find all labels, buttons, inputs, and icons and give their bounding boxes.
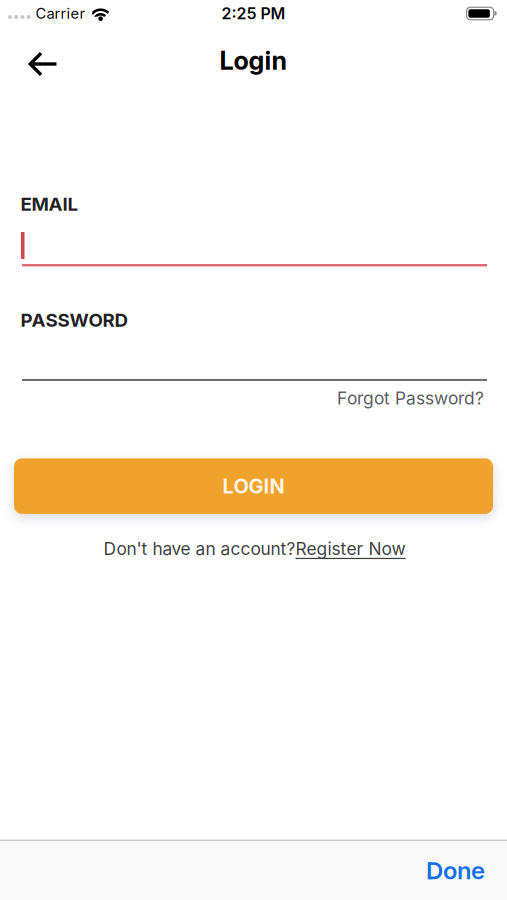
button[interactable]: Forgot Password? — [337, 388, 484, 408]
staticText: Forgot Password? — [337, 388, 484, 408]
staticText: 2:25 PM — [221, 4, 285, 23]
staticText: EMAIL — [20, 193, 78, 215]
staticText: Done — [426, 856, 485, 885]
button[interactable]: Done — [426, 856, 507, 885]
staticText: Don't have an account? — [103, 538, 295, 559]
button[interactable]: LOGIN — [14, 458, 493, 514]
staticText: Carrier — [36, 5, 86, 22]
staticText: PASSWORD — [20, 309, 127, 331]
staticText: Login — [219, 46, 287, 75]
staticText: LOGIN — [222, 474, 284, 498]
button[interactable]: Back — [0, 38, 57, 78]
button[interactable]: Register Now — [295, 538, 405, 559]
staticText: Register Now — [295, 538, 405, 559]
